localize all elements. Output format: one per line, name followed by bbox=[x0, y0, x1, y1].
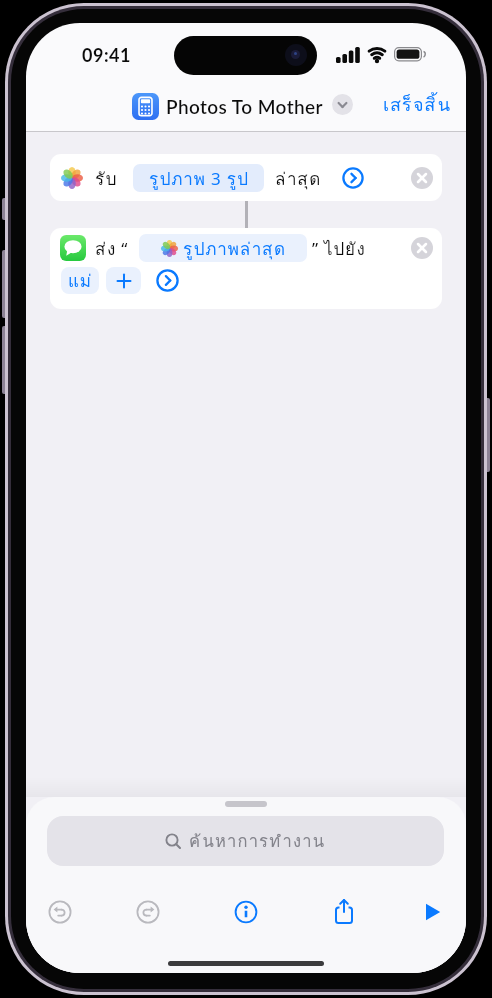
staticText: รูปภาพล่าสุด bbox=[183, 235, 286, 262]
staticText: Photos To Mother bbox=[166, 95, 323, 118]
button[interactable] bbox=[106, 267, 141, 294]
button[interactable]: ค้นหาการทำงาน bbox=[47, 816, 444, 866]
staticText: ส่ง “ bbox=[95, 235, 129, 262]
staticText: ล่าสุด bbox=[275, 165, 322, 192]
staticText: แม่ bbox=[68, 267, 93, 294]
button[interactable] bbox=[425, 903, 441, 921]
staticText: ” ไปยัง bbox=[312, 235, 366, 262]
staticText: รูปภาพ 3 รูป bbox=[149, 165, 249, 192]
button[interactable] bbox=[234, 900, 258, 924]
button[interactable] bbox=[48, 900, 72, 924]
button[interactable]: ส่ง “ bbox=[50, 228, 442, 309]
button[interactable]: รูปภาพล่าสุด bbox=[139, 234, 307, 262]
button[interactable] bbox=[332, 898, 356, 925]
staticText: เสร็จสิ้น bbox=[383, 90, 451, 119]
button[interactable]: รับ bbox=[50, 154, 442, 201]
button[interactable] bbox=[411, 237, 433, 259]
staticText: ค้นหาการทำงาน bbox=[189, 828, 326, 854]
button[interactable] bbox=[332, 94, 353, 115]
button[interactable] bbox=[156, 269, 179, 292]
button[interactable]: แม่ bbox=[61, 267, 99, 294]
button[interactable] bbox=[136, 900, 160, 924]
button[interactable] bbox=[411, 167, 433, 189]
button[interactable]: รูปภาพ 3 รูป bbox=[133, 164, 264, 192]
button[interactable] bbox=[342, 167, 364, 189]
button[interactable]: เสร็จสิ้น bbox=[356, 90, 451, 119]
staticText: รับ bbox=[95, 165, 118, 192]
staticText: 09:41 bbox=[82, 44, 131, 66]
